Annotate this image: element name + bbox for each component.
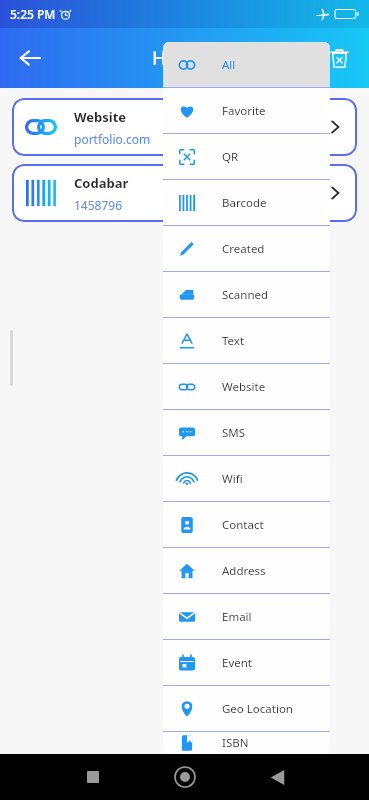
button[interactable]: Geo Location	[163, 686, 330, 731]
button[interactable]: Created	[163, 226, 330, 271]
button[interactable]: QR	[163, 134, 330, 179]
button[interactable]: Recent apps	[74, 758, 112, 796]
button[interactable]: Codabar	[12, 164, 357, 222]
staticText: All	[222, 57, 236, 73]
button[interactable]: Email	[163, 594, 330, 639]
staticText: portfolio.com	[74, 131, 151, 147]
button[interactable]: Event	[163, 640, 330, 685]
staticText: Email	[222, 609, 252, 625]
button[interactable]: Contact	[163, 502, 330, 547]
button[interactable]: Address	[163, 548, 330, 593]
staticText: History	[152, 45, 218, 71]
staticText: Contact	[222, 517, 264, 533]
staticText: Text	[222, 333, 245, 349]
button[interactable]: Barcode	[163, 180, 330, 225]
button[interactable]: Website	[163, 364, 330, 409]
button[interactable]: Home	[166, 758, 204, 796]
staticText: Event	[222, 655, 252, 671]
button[interactable]: Scanned	[163, 272, 330, 317]
button[interactable]: All	[163, 42, 330, 87]
staticText: Website	[74, 108, 127, 126]
button[interactable]: Favorite	[163, 88, 330, 133]
staticText: QR	[222, 149, 239, 165]
button[interactable]: Back	[258, 758, 296, 796]
staticText: SMS	[222, 425, 246, 441]
button[interactable]: Delete all	[317, 36, 361, 80]
staticText: Created	[222, 241, 265, 257]
staticText: 5:25 PM	[10, 6, 56, 22]
staticText: Scanned	[222, 287, 269, 303]
staticText: Wifi	[222, 471, 243, 487]
staticText: Website	[222, 379, 266, 395]
staticText: Address	[222, 563, 266, 579]
button[interactable]: Wifi	[163, 456, 330, 501]
button[interactable]: Website	[12, 98, 357, 156]
staticText: Barcode	[222, 195, 267, 211]
staticText: Favorite	[222, 103, 266, 119]
staticText: Codabar	[74, 174, 129, 192]
staticText: 1458796	[74, 197, 123, 213]
button[interactable]: SMS	[163, 410, 330, 455]
button[interactable]: ISBN	[163, 732, 330, 754]
button[interactable]: Back	[8, 36, 52, 80]
button[interactable]: Text	[163, 318, 330, 363]
staticText: Geo Location	[222, 701, 293, 717]
staticText: ISBN	[222, 735, 249, 751]
